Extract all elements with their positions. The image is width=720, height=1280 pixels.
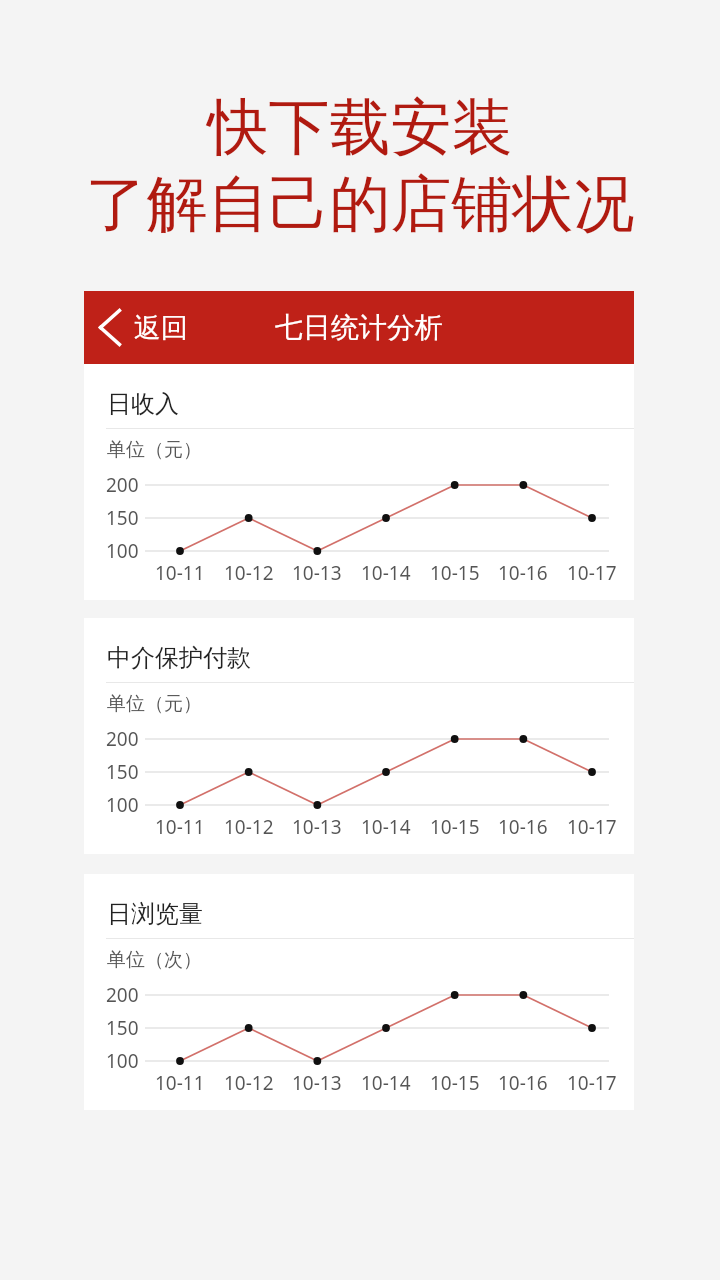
staticText: 单位（次）: [107, 948, 202, 972]
staticText: 10-16: [498, 1070, 548, 1096]
button[interactable]: 日收入: [84, 364, 634, 600]
staticText: 10-17: [567, 1070, 617, 1096]
staticText: 200: [106, 982, 139, 1008]
staticText: 10-12: [224, 814, 274, 840]
staticText: 10-12: [224, 1070, 274, 1096]
staticText: 七日统计分析: [275, 310, 443, 345]
button[interactable]: 返回: [99, 291, 188, 364]
staticText: 10-16: [498, 814, 548, 840]
staticText: 100: [106, 538, 139, 564]
staticText: 10-13: [292, 814, 342, 840]
staticText: 10-16: [498, 560, 548, 586]
staticText: 10-17: [567, 560, 617, 586]
staticText: 10-15: [430, 560, 480, 586]
staticText: 返回: [134, 311, 188, 345]
staticText: 10-11: [155, 560, 205, 586]
staticText: 10-13: [292, 1070, 342, 1096]
staticText: 150: [106, 759, 139, 785]
staticText: 10-15: [430, 814, 480, 840]
staticText: 10-17: [567, 814, 617, 840]
staticText: 单位（元）: [107, 692, 202, 716]
button[interactable]: 中介保护付款: [84, 618, 634, 854]
staticText: 了解自己的店铺状况: [0, 166, 720, 243]
staticText: 100: [106, 1048, 139, 1074]
staticText: 200: [106, 472, 139, 498]
staticText: 10-15: [430, 1070, 480, 1096]
staticText: 10-11: [155, 814, 205, 840]
button[interactable]: 日浏览量: [84, 874, 634, 1110]
staticText: 日收入: [107, 389, 179, 419]
staticText: 10-13: [292, 560, 342, 586]
staticText: 100: [106, 792, 139, 818]
staticText: 10-12: [224, 560, 274, 586]
staticText: 日浏览量: [107, 899, 203, 929]
staticText: 快下载安装: [0, 89, 720, 166]
staticText: 10-14: [361, 560, 411, 586]
staticText: 200: [106, 726, 139, 752]
staticText: 150: [106, 1015, 139, 1041]
staticText: 150: [106, 505, 139, 531]
staticText: 单位（元）: [107, 438, 202, 462]
other: 返回: [99, 309, 121, 346]
staticText: 中介保护付款: [107, 643, 251, 673]
staticText: 10-14: [361, 1070, 411, 1096]
staticText: 10-14: [361, 814, 411, 840]
staticText: 10-11: [155, 1070, 205, 1096]
